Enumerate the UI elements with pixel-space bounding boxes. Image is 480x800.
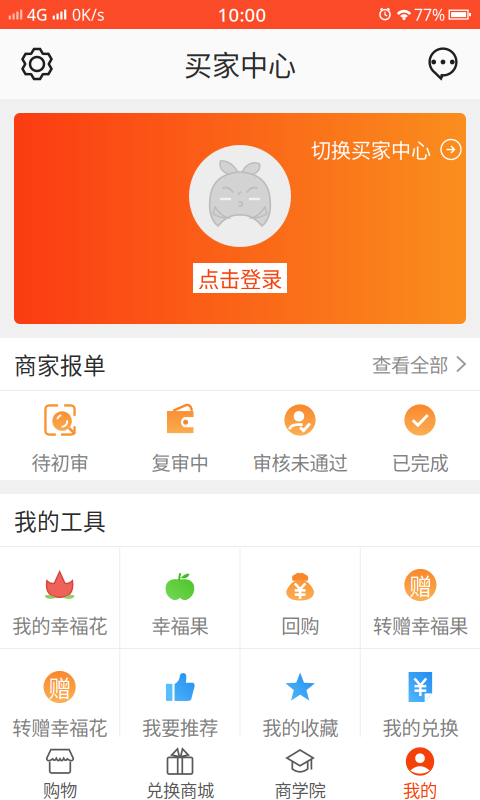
button[interactable]: 赠: [0, 649, 119, 750]
staticText: 赠: [410, 570, 431, 600]
button[interactable]: 商学院: [240, 737, 360, 800]
button[interactable]: 待初审: [0, 391, 120, 480]
staticText: 购物: [43, 777, 77, 800]
staticText: 兑换商城: [146, 777, 214, 800]
staticText: 幸福果: [151, 611, 208, 639]
button[interactable]: 设置: [8, 29, 66, 99]
staticText: 商学院: [274, 777, 325, 800]
staticText: 切换买家中心: [311, 135, 431, 164]
staticText: 10:00: [217, 2, 266, 27]
button[interactable]: 消息: [414, 29, 472, 99]
staticText: 商家报单: [14, 348, 106, 380]
button[interactable]: 购物: [0, 737, 120, 800]
button[interactable]: 我要推荐: [120, 649, 239, 750]
staticText: 77%: [414, 4, 445, 25]
staticText: 我要推荐: [142, 713, 218, 741]
button[interactable]: 已完成: [360, 391, 480, 480]
button[interactable]: 幸福果: [120, 547, 239, 648]
button[interactable]: 我的: [360, 737, 480, 800]
staticText: 转赠幸福花: [12, 713, 107, 741]
staticText: 审核未通过: [252, 448, 347, 476]
button[interactable]: 我的兑换: [361, 649, 480, 750]
staticText: 我的幸福花: [12, 611, 107, 639]
staticText: 赠: [49, 672, 70, 702]
staticText: 买家中心: [184, 44, 296, 84]
staticText: 转赠幸福果: [373, 611, 468, 639]
button[interactable]: 赠: [361, 547, 480, 648]
staticText: 我的: [403, 777, 437, 800]
button[interactable]: 我的收藏: [240, 649, 360, 750]
button[interactable]: 查看全部: [372, 350, 466, 378]
button[interactable]: 回购: [240, 547, 360, 648]
staticText: 回购: [281, 611, 319, 639]
button[interactable]: 切换买家中心: [311, 113, 466, 164]
staticText: 查看全部: [372, 350, 448, 378]
staticText: 我的工具: [14, 504, 106, 536]
button[interactable]: 点击登录: [193, 263, 287, 293]
button[interactable]: 复审中: [120, 391, 240, 480]
staticText: 0K/s: [72, 4, 105, 25]
staticText: 已完成: [391, 448, 448, 476]
staticText: 我的收藏: [262, 713, 338, 741]
staticText: 4G: [27, 4, 48, 25]
button[interactable]: 兑换商城: [120, 737, 240, 800]
staticText: 复审中: [151, 448, 208, 476]
button[interactable]: 我的幸福花: [0, 547, 119, 648]
button[interactable]: 审核未通过: [240, 391, 360, 480]
staticText: 我的兑换: [382, 713, 458, 741]
staticText: 待初审: [31, 448, 88, 476]
staticText: 点击登录: [198, 263, 282, 293]
